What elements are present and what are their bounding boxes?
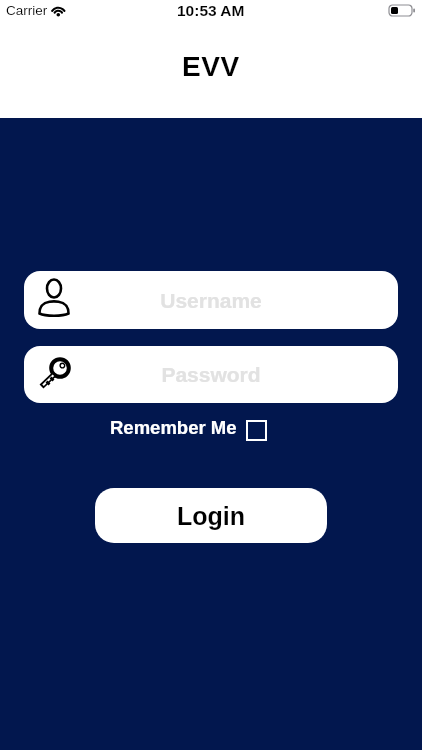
button[interactable]: Password bbox=[24, 346, 398, 403]
staticText: Remember Me bbox=[110, 417, 237, 438]
staticText: 10:53 AM bbox=[177, 2, 245, 19]
staticText: Username bbox=[160, 289, 262, 312]
button[interactable]: Remember Me bbox=[104, 413, 272, 445]
staticText: Carrier bbox=[6, 3, 48, 18]
staticText: Password bbox=[161, 363, 261, 386]
staticText: Login bbox=[177, 502, 246, 530]
button[interactable]: Login bbox=[95, 488, 327, 543]
button[interactable]: Username bbox=[24, 271, 398, 329]
staticText: EVV bbox=[182, 51, 240, 82]
